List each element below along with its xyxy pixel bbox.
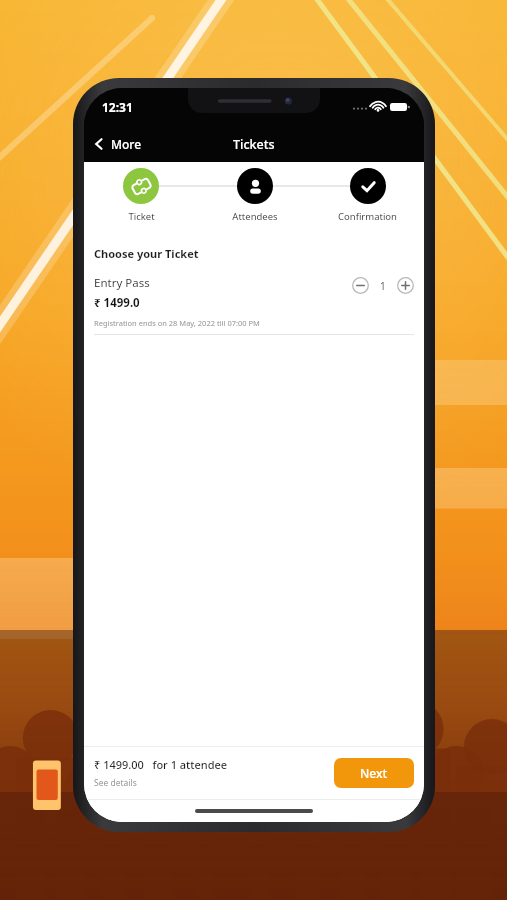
staticText: ₹ 1499.00 for 1 attendee	[94, 757, 228, 772]
button[interactable]: Back	[84, 132, 150, 156]
button[interactable]: Ticket	[84, 162, 198, 223]
staticText: ₹ 1499.0	[94, 295, 140, 311]
button[interactable]: Attendees	[198, 162, 311, 223]
staticText: Confirmation	[338, 210, 397, 223]
staticText: More	[111, 136, 142, 152]
button[interactable]: Increase quantity	[397, 277, 414, 294]
button[interactable]: Next	[334, 758, 414, 788]
other: Back	[92, 137, 106, 151]
button[interactable]: Decrease quantity	[352, 277, 369, 294]
staticText: Tickets	[233, 136, 275, 153]
staticText: Registration ends on 28 May, 2022 till 0…	[94, 318, 260, 328]
staticText: 12:31	[102, 99, 133, 115]
button[interactable]: See details	[94, 777, 137, 789]
staticText: Entry Pass	[94, 275, 150, 291]
staticText: Next	[360, 765, 388, 781]
staticText: See details	[94, 777, 137, 789]
staticText: Attendees	[232, 210, 278, 223]
button[interactable]: Confirmation	[311, 162, 424, 223]
staticText: 1	[380, 279, 386, 293]
staticText: Ticket	[128, 210, 155, 223]
staticText: Choose your Ticket	[94, 246, 199, 261]
